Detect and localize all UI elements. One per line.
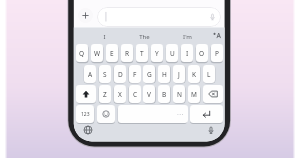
button[interactable]: H [158, 65, 170, 83]
staticText: E [110, 49, 114, 58]
button[interactable]: B [158, 85, 170, 103]
button[interactable]: O [196, 44, 208, 62]
button[interactable] [76, 85, 96, 103]
button[interactable] [81, 123, 95, 137]
button[interactable]: 123 [76, 105, 94, 123]
button[interactable] [118, 105, 188, 123]
button[interactable]: N [173, 85, 185, 103]
staticText: T [140, 49, 144, 58]
staticText: 123 [81, 111, 90, 118]
staticText: Z [103, 90, 107, 99]
staticText: F [133, 70, 137, 79]
button[interactable]: T [136, 44, 148, 62]
staticText: N [177, 90, 182, 99]
staticText: M [191, 90, 197, 99]
staticText: B [162, 90, 167, 99]
button[interactable]: X [114, 85, 126, 103]
button[interactable] [190, 105, 223, 123]
staticText: H [162, 70, 167, 79]
staticText: U [170, 49, 175, 58]
button[interactable]: S [99, 65, 111, 83]
button[interactable]: F [129, 65, 141, 83]
staticText: Q [79, 49, 85, 58]
staticText: A [88, 70, 93, 79]
button[interactable]: D [114, 65, 126, 83]
staticText: X [118, 90, 122, 99]
staticText: V [147, 90, 151, 99]
button[interactable]: A [84, 65, 96, 83]
button[interactable]: The [132, 29, 156, 44]
staticText: P [215, 49, 219, 58]
staticText: Y [155, 49, 159, 58]
button[interactable]: Q [76, 44, 88, 62]
button[interactable]: Y [151, 44, 163, 62]
button[interactable]: M [188, 85, 200, 103]
staticText: L [207, 70, 211, 79]
staticText: O [199, 49, 205, 58]
button[interactable] [203, 85, 223, 103]
button[interactable]: U [166, 44, 178, 62]
staticText: K [192, 70, 197, 79]
button[interactable] [97, 105, 115, 123]
button[interactable]: E [106, 44, 118, 62]
staticText: The [139, 33, 150, 41]
staticText: W [94, 49, 101, 58]
button[interactable]: R [121, 44, 133, 62]
staticText: J [178, 70, 180, 79]
staticText: I [186, 49, 189, 58]
button[interactable]: I [181, 44, 193, 62]
button[interactable]: Z [99, 85, 111, 103]
button[interactable] [204, 123, 218, 137]
button[interactable]: I [92, 29, 116, 44]
staticText: I [103, 33, 106, 41]
button[interactable] [211, 29, 224, 42]
button[interactable] [97, 7, 221, 27]
button[interactable] [78, 8, 93, 23]
button[interactable]: V [143, 85, 155, 103]
button[interactable]: L [203, 65, 215, 83]
button[interactable]: P [211, 44, 223, 62]
staticText: I'm [183, 33, 192, 41]
button[interactable]: G [143, 65, 155, 83]
staticText: G [147, 70, 152, 79]
button[interactable]: I'm [175, 29, 199, 44]
staticText: R [125, 49, 130, 58]
button[interactable]: C [129, 85, 141, 103]
button[interactable]: J [173, 65, 185, 83]
button[interactable]: W [91, 44, 103, 62]
staticText: C [133, 90, 138, 99]
staticText: D [118, 70, 123, 79]
button[interactable]: K [188, 65, 200, 83]
staticText: S [103, 70, 107, 79]
